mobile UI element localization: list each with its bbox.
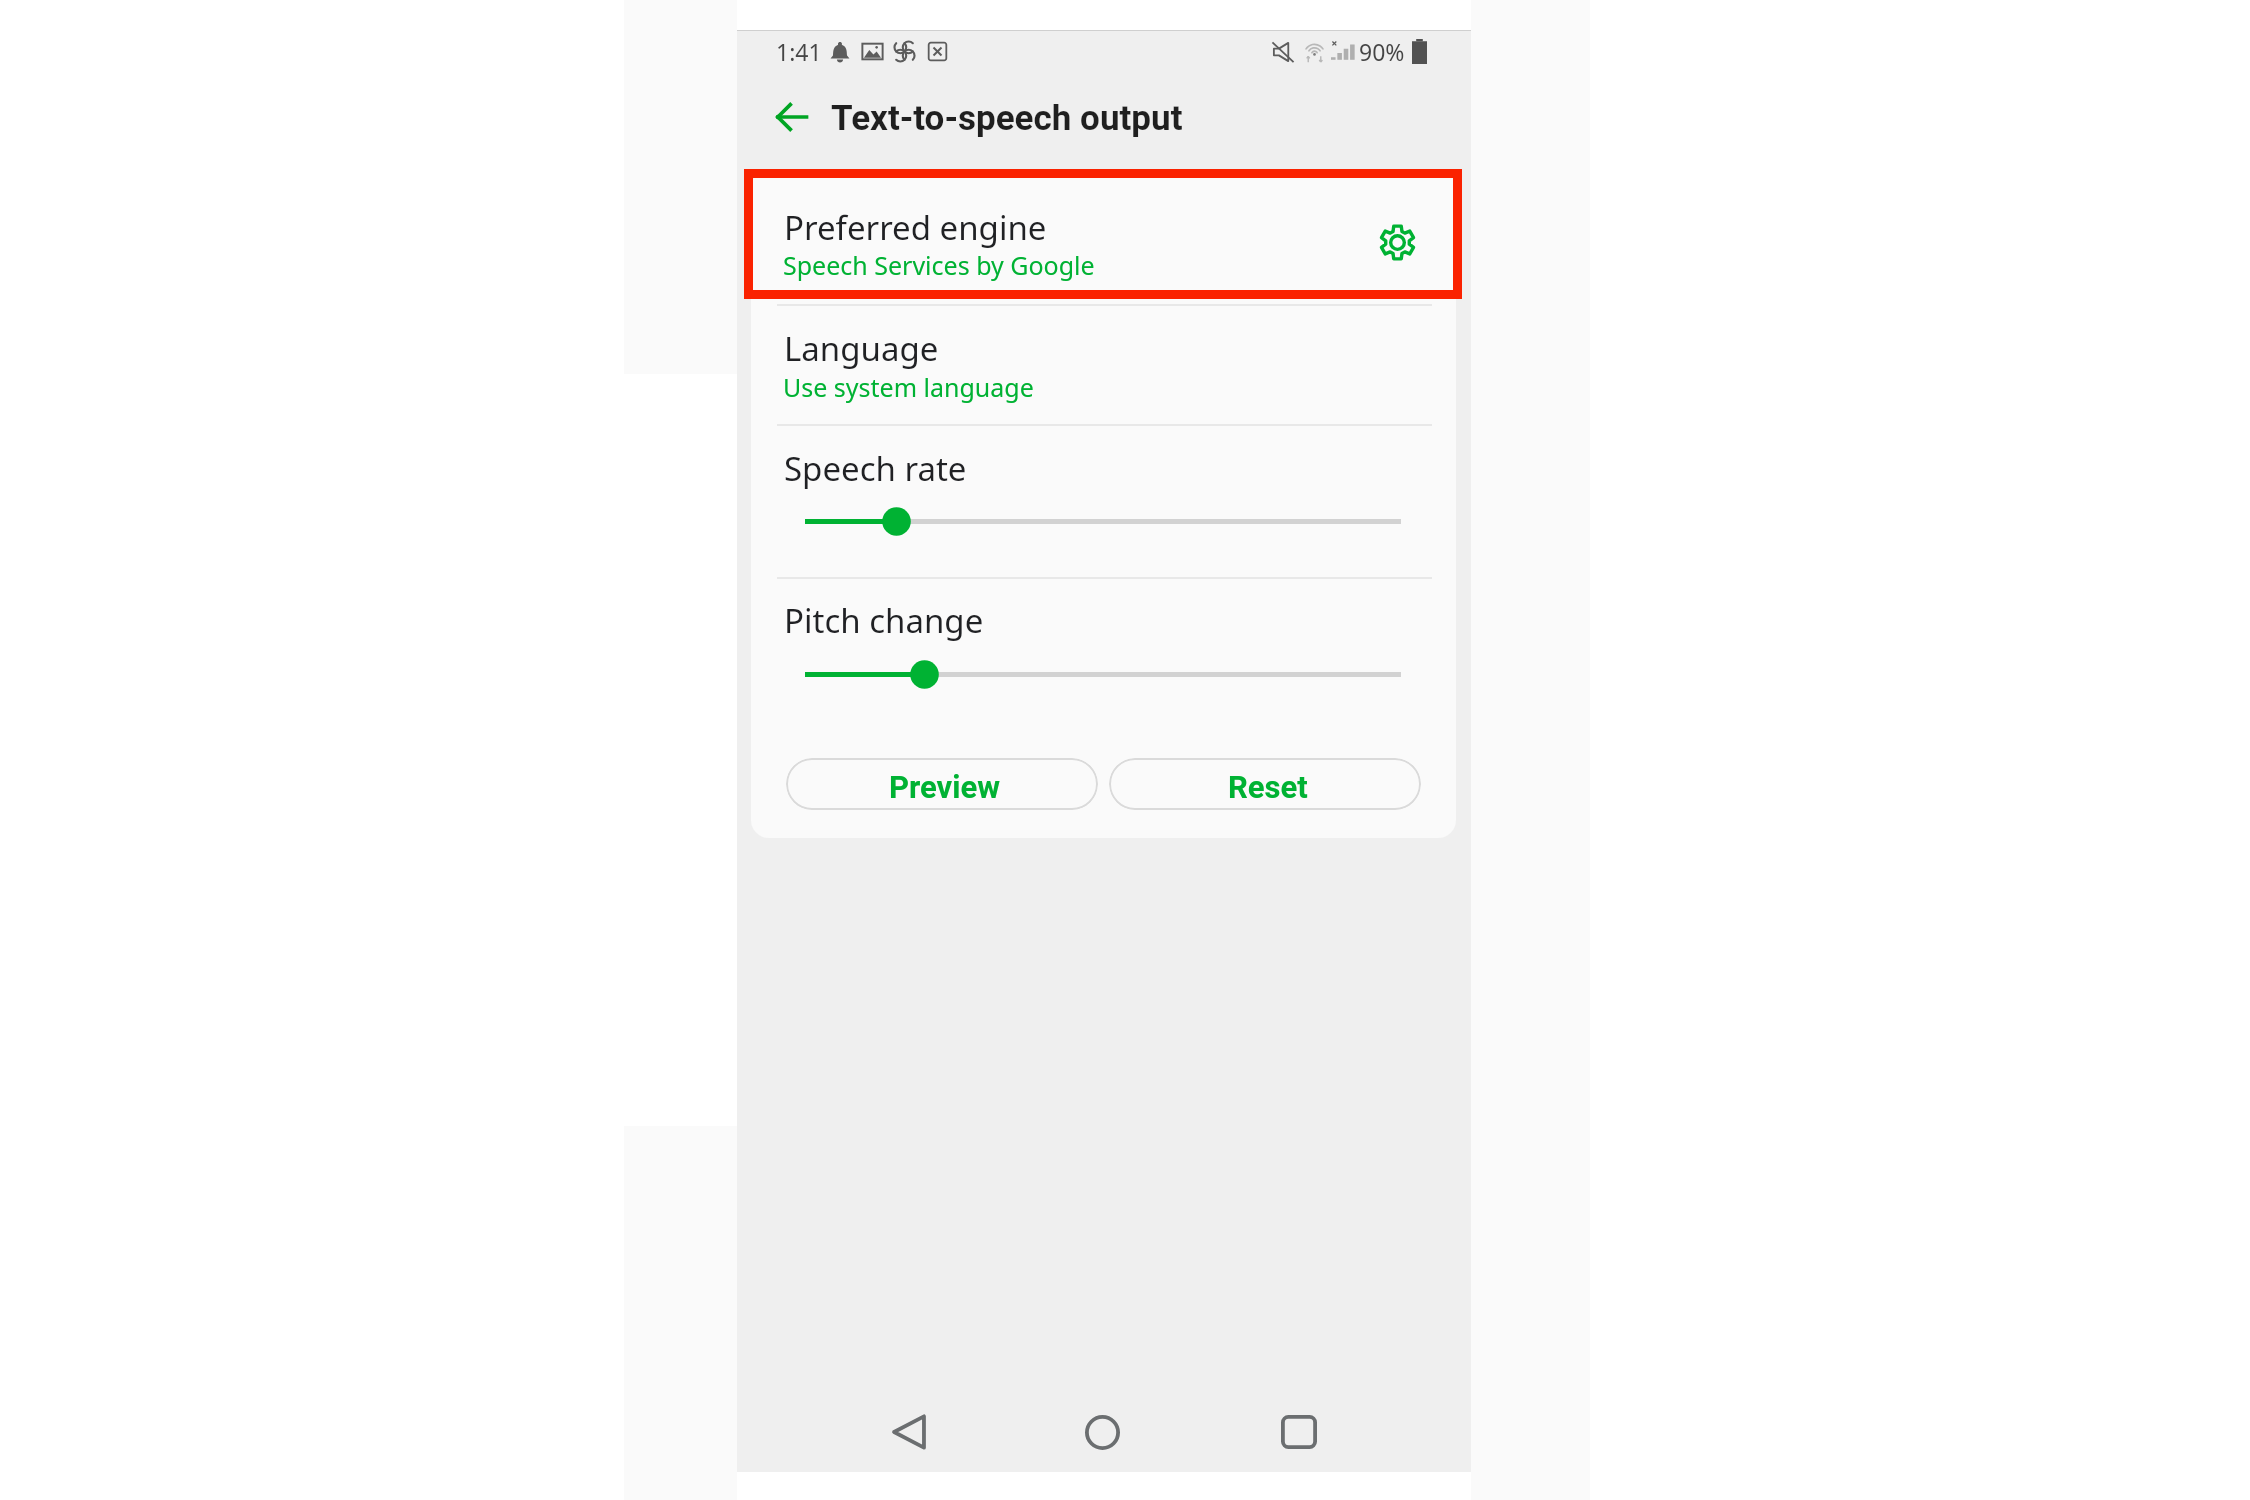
button[interactable]: Back xyxy=(767,94,815,139)
button[interactable]: Preview xyxy=(786,758,1098,810)
button[interactable] xyxy=(751,424,1456,577)
staticText: Preview xyxy=(889,769,1001,805)
staticText: 1:41 xyxy=(776,36,822,67)
staticText: Use system language xyxy=(783,370,1034,404)
button[interactable]: Recents xyxy=(1259,1393,1339,1471)
staticText: Language xyxy=(784,326,939,371)
staticText: Reset xyxy=(1228,769,1308,805)
staticText: Preferred engine xyxy=(784,205,1047,250)
staticText: Speech rate xyxy=(784,446,967,491)
button[interactable]: Reset xyxy=(1109,758,1421,810)
button[interactable] xyxy=(751,304,1456,424)
button[interactable]: Engine settings xyxy=(751,170,1456,304)
button[interactable]: Home xyxy=(1063,1393,1142,1472)
staticText: Speech Services by Google xyxy=(783,248,1095,282)
button[interactable]: Back xyxy=(870,1393,948,1471)
staticText: 90% xyxy=(1359,36,1405,67)
button[interactable]: Engine settings xyxy=(1378,224,1417,261)
button[interactable] xyxy=(751,577,1456,730)
staticText: Text-to-speech output xyxy=(831,98,1183,139)
staticText: Pitch change xyxy=(784,598,984,643)
